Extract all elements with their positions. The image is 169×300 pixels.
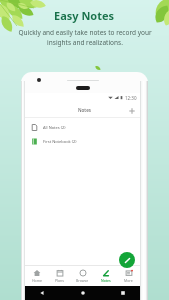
staticText: First Notebook (2) [43, 139, 77, 144]
button[interactable]: Browse [71, 265, 94, 286]
staticText: Notes [78, 107, 92, 113]
button[interactable]: First Notebook (2) [25, 134, 140, 148]
staticText: Browse [76, 278, 89, 283]
staticText: Home [32, 278, 42, 283]
other: Recents [120, 290, 126, 296]
staticText: Plans [55, 278, 64, 283]
button[interactable]: Notes [94, 265, 117, 286]
staticText: Easy Notes [54, 8, 115, 23]
staticText: 12:30 [125, 95, 137, 101]
button[interactable]: More [117, 265, 140, 286]
staticText: Notes [101, 278, 111, 283]
button[interactable]: Home [25, 265, 48, 286]
other: Home [80, 290, 86, 296]
button[interactable]: Plans [48, 265, 71, 286]
button[interactable]: New note [119, 252, 135, 268]
staticText: All Notes (2) [43, 125, 66, 130]
staticText: Quickly and easily take notes to record … [18, 28, 152, 47]
button[interactable]: Add note [126, 105, 137, 116]
staticText: More [124, 278, 133, 283]
other: Back [39, 290, 45, 296]
button[interactable]: All Notes (2) [25, 120, 140, 134]
